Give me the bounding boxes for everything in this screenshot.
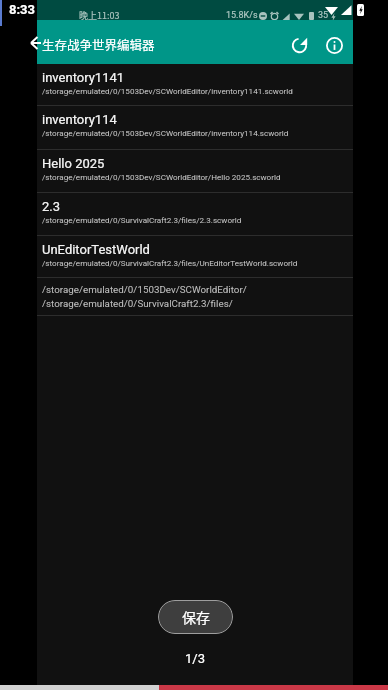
staticText: /storage/emulated/0/1503Dev/SCWorldEdito… <box>42 86 293 95</box>
button[interactable]: 2.3 <box>37 193 353 236</box>
button[interactable]: inventory114 <box>37 106 353 150</box>
staticText: Hello 2025 <box>42 156 105 171</box>
button[interactable]: 保存 <box>158 600 233 634</box>
button[interactable]: Back <box>25 31 49 55</box>
staticText: 15.8K/s <box>226 10 258 21</box>
staticText: 保存 <box>182 607 210 627</box>
button[interactable]: Info <box>318 29 350 61</box>
button[interactable]: inventory1141 <box>37 64 353 106</box>
button[interactable]: Hello 2025 <box>37 150 353 193</box>
staticText: 35 <box>318 10 329 21</box>
staticText: UnEditorTestWorld <box>42 242 150 257</box>
staticText: /storage/emulated/0/1503Dev/SCWorldEdito… <box>42 128 289 137</box>
button[interactable]: Refresh <box>283 29 315 61</box>
staticText: 1/3 <box>185 651 205 666</box>
staticText: 晚上11:03 <box>79 9 120 22</box>
staticText: 2.3 <box>42 199 61 214</box>
button[interactable]: UnEditorTestWorld <box>37 236 353 278</box>
staticText: /storage/emulated/0/SurvivalCraft2.3/fil… <box>42 258 298 267</box>
staticText: /storage/emulated/0/SurvivalCraft2.3/fil… <box>42 215 242 224</box>
staticText: inventory1141 <box>42 70 125 85</box>
button[interactable]: /storage/emulated/0/1503Dev/SCWorldEdito… <box>37 278 353 316</box>
staticText: /storage/emulated/0/1503Dev/SCWorldEdito… <box>42 172 281 181</box>
staticText: inventory114 <box>42 112 117 127</box>
staticText: /storage/emulated/0/SurvivalCraft2.3/fil… <box>42 298 233 309</box>
staticText: 8:33 <box>9 2 36 17</box>
staticText: 生存战争世界编辑器 <box>42 35 155 53</box>
staticText: /storage/emulated/0/1503Dev/SCWorldEdito… <box>42 284 247 295</box>
